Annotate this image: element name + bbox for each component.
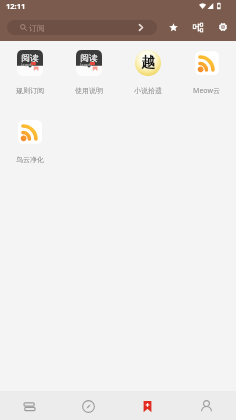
button[interactable]: 越 (118, 41, 177, 110)
staticText: 越 (141, 54, 155, 72)
staticText: Legado (73, 62, 99, 67)
staticText: 阅读 (76, 53, 102, 64)
button[interactable]: Profile (177, 392, 236, 420)
button[interactable]: Bookshelf (0, 392, 59, 420)
button[interactable]: 阅读 (59, 41, 118, 110)
button[interactable]: 阅读 (0, 41, 59, 110)
button[interactable]: Favorites (161, 15, 185, 39)
staticText: 鸟云净化 (16, 155, 44, 164)
staticText: 规则订阅 (16, 86, 44, 95)
staticText: 阅读 (17, 53, 43, 64)
button[interactable]: Subscriptions (118, 392, 177, 420)
staticText: 订阅 (29, 23, 45, 33)
button[interactable]: 订阅 (7, 20, 157, 35)
button[interactable]: 鸟云净化 (0, 110, 59, 179)
button[interactable]: Explore (59, 392, 118, 420)
staticText: 使用说明 (75, 86, 103, 95)
staticText: Legado (14, 62, 40, 67)
button[interactable]: Share (186, 15, 210, 39)
staticText: Meow云 (193, 86, 220, 96)
button[interactable]: Settings (211, 15, 235, 39)
button[interactable]: Meow云 (177, 41, 236, 110)
staticText: 小说拾遗 (134, 86, 162, 95)
staticText: 12:11 (6, 1, 26, 11)
